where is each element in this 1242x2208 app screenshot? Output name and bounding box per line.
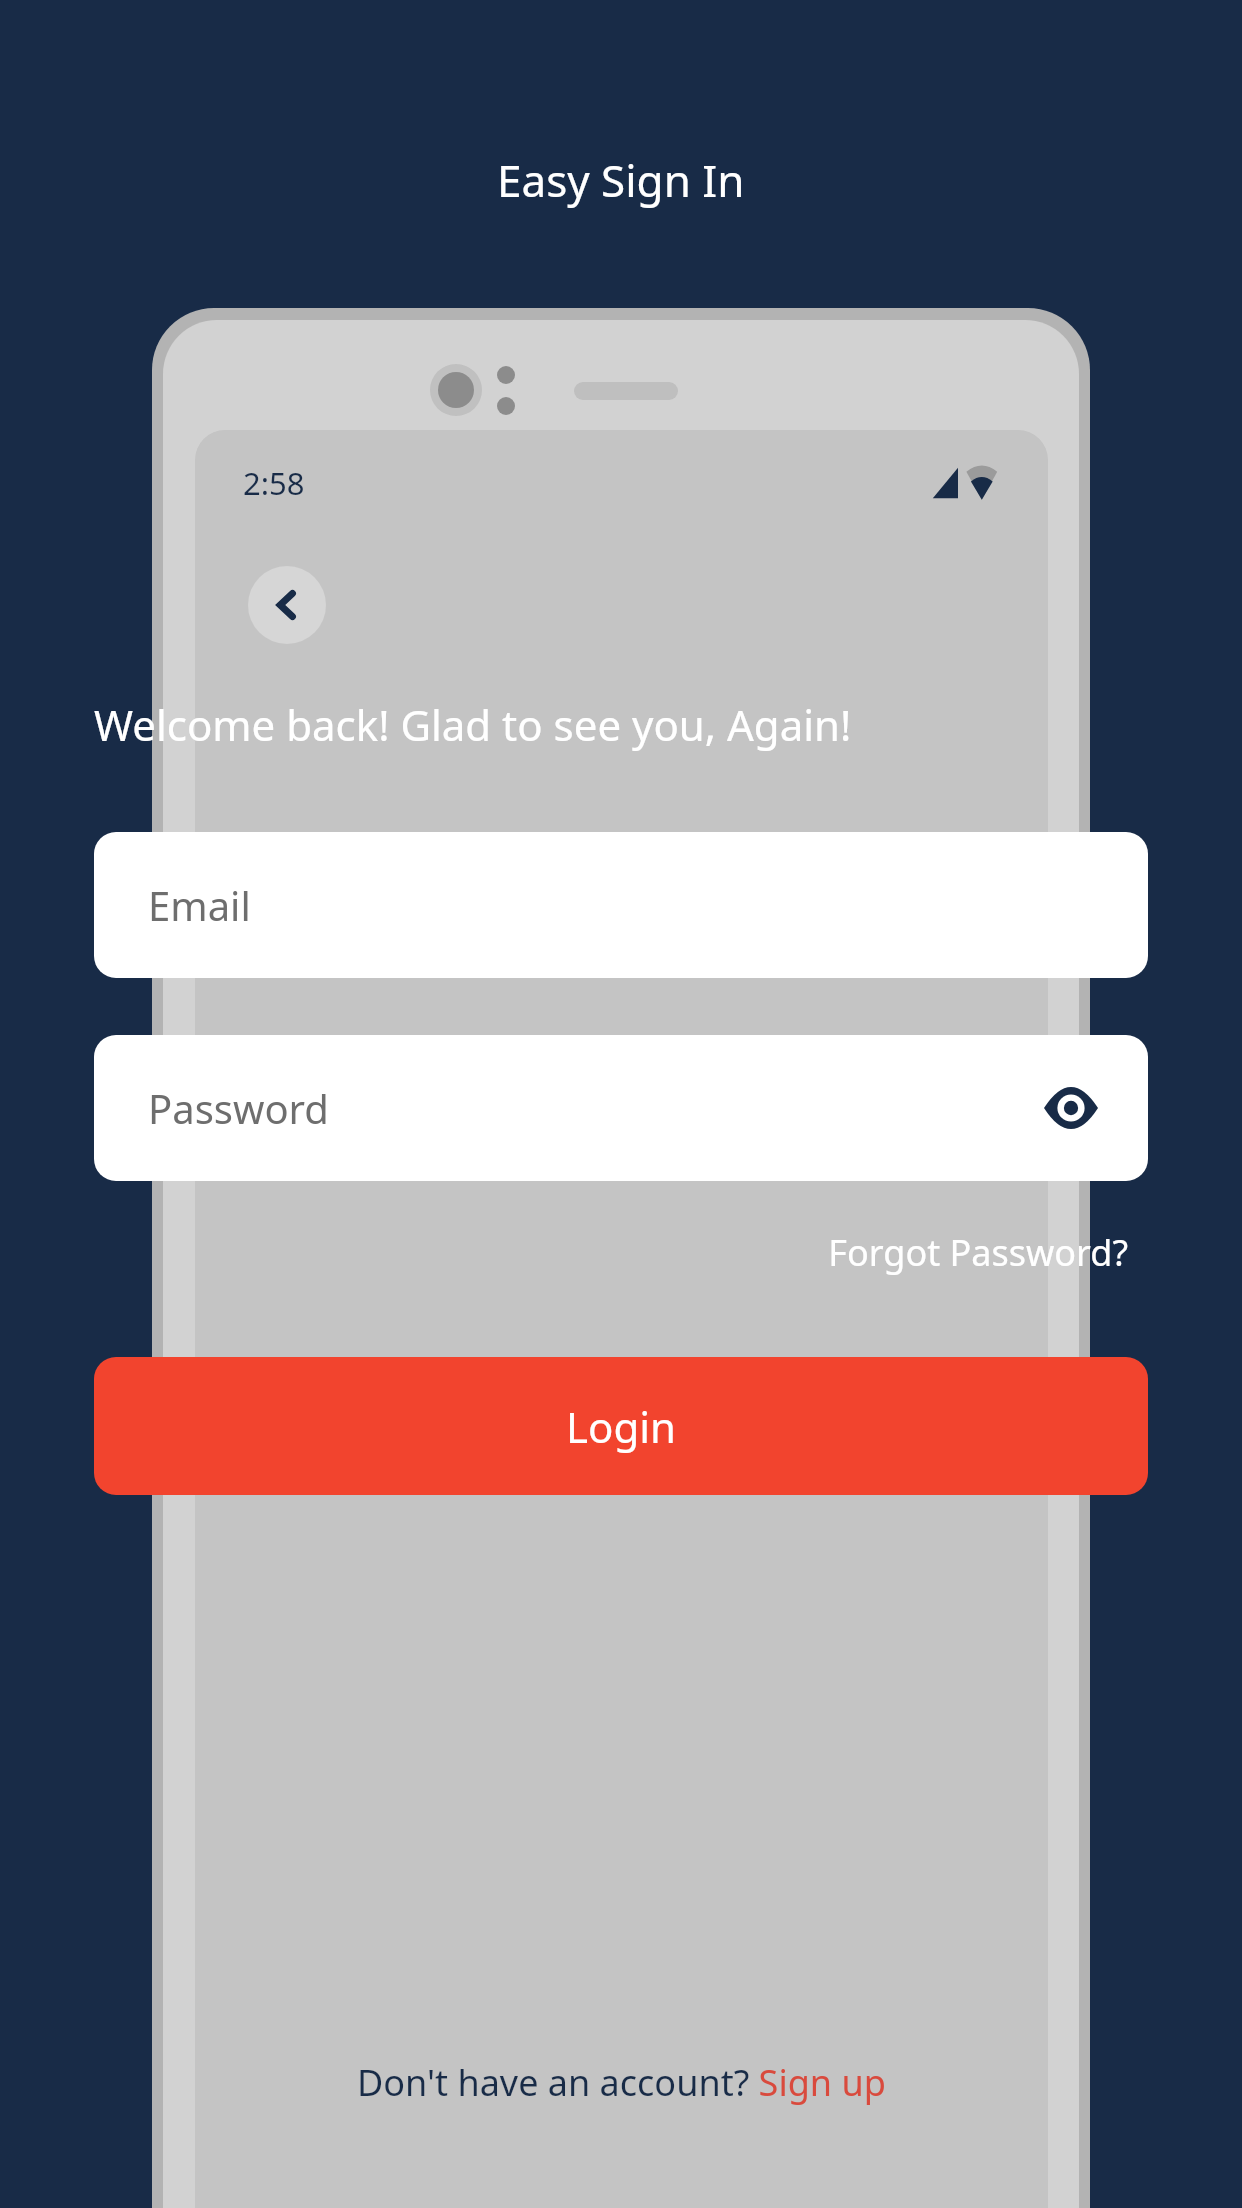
- staticText: Welcome back! Glad to see you, Again!: [94, 696, 852, 753]
- button[interactable]: Login: [94, 1357, 1148, 1495]
- staticText: Easy Sign In: [497, 150, 745, 210]
- button[interactable]: Forgot Password?: [600, 1212, 1128, 1292]
- button[interactable]: Don't have an account? Sign up: [357, 2058, 886, 2107]
- button[interactable]: Back: [248, 566, 326, 644]
- staticText: Forgot Password?: [828, 1228, 1128, 1277]
- button[interactable]: Password: [94, 1035, 1148, 1181]
- staticText: Email: [148, 878, 251, 932]
- staticText: Login: [566, 1398, 677, 1455]
- button[interactable]: Show password: [1034, 1071, 1108, 1145]
- staticText: Password: [148, 1081, 329, 1135]
- staticText: Don't have an account? Sign up: [357, 2058, 886, 2107]
- staticText: 2:58: [243, 462, 305, 504]
- button[interactable]: Email: [94, 832, 1148, 978]
